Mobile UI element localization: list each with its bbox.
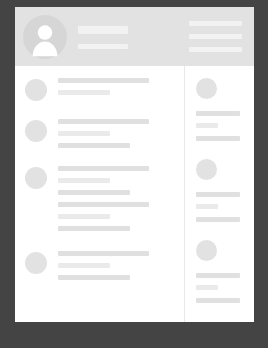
- button[interactable]: [15, 231, 184, 280]
- button[interactable]: [15, 148, 184, 231]
- button[interactable]: [185, 222, 254, 303]
- button[interactable]: [185, 141, 254, 222]
- button[interactable]: Profile avatar placeholder: [15, 7, 254, 66]
- button[interactable]: [15, 101, 184, 148]
- button[interactable]: [185, 66, 254, 141]
- other: Profile avatar placeholder: [23, 15, 67, 59]
- button[interactable]: [15, 66, 184, 101]
